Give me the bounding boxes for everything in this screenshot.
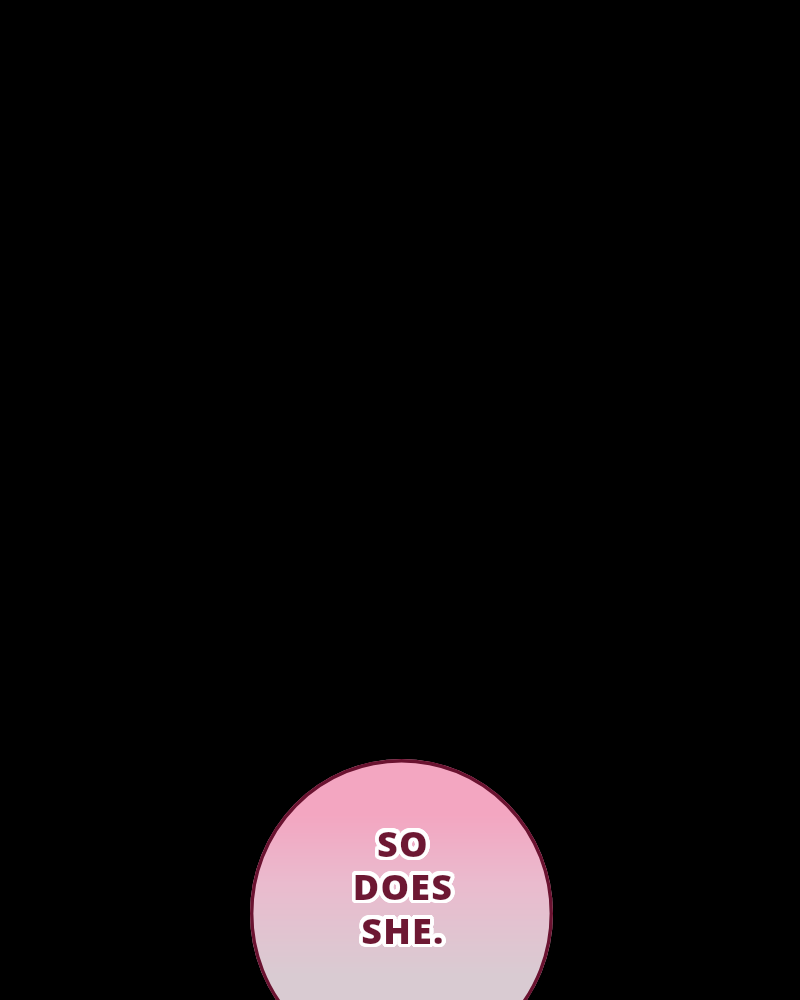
button[interactable]: Speech bubble: So does she.: [0, 0, 800, 1000]
